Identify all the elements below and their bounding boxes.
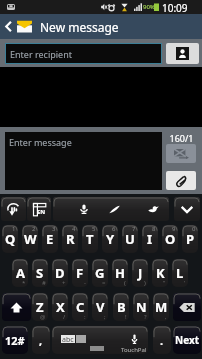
button[interactable]: H [112,259,128,287]
staticText: Next [175,333,200,347]
staticText: , [165,313,167,321]
button[interactable]: . [153,326,171,354]
staticText: Enter message [9,136,72,148]
staticText: 90% [143,3,155,11]
button[interactable]: T [82,225,98,253]
staticText: 5 [92,225,96,233]
button[interactable]: V [92,293,108,321]
staticText: E [46,230,54,248]
staticText: G [95,264,105,282]
button[interactable]: U [122,225,138,253]
staticText: T [86,230,94,248]
staticText: , [39,333,43,348]
button[interactable]: N [133,293,149,321]
button[interactable]: Next [173,326,201,354]
button[interactable]: S [32,259,48,287]
staticText: : [84,313,86,321]
button[interactable]: Hide keyboard [174,197,200,221]
button[interactable]: J [132,259,148,287]
button[interactable]: Q [2,225,18,253]
staticText: * [22,279,26,287]
staticText: Z [36,298,44,316]
button[interactable]: Send message [166,144,196,163]
staticText: J [138,264,143,282]
staticText: 8 [152,225,156,233]
staticText: 3 [52,225,56,233]
button[interactable]: Shift [2,293,31,321]
button[interactable]: G [92,259,108,287]
button[interactable]: TouchPal menu [1,197,26,221]
staticText: ( [124,279,126,287]
button[interactable]: R [62,225,78,253]
button[interactable]: Attach [166,171,196,190]
staticText: 12# [5,333,25,348]
staticText: / [63,313,66,321]
staticText: - [84,279,86,287]
staticText: # [42,279,46,287]
button[interactable]: L [172,259,188,287]
staticText: = [102,279,106,287]
staticText: 7 [132,225,136,233]
button[interactable]: Space [52,326,148,354]
staticText: ! [125,313,127,321]
button[interactable]: I [142,225,158,253]
staticText: TouchPal [121,346,147,354]
button[interactable]: Navigate up [0,14,16,39]
staticText: + [62,279,66,287]
staticText: U [125,230,135,248]
button[interactable]: C [72,293,88,321]
staticText: D [55,264,65,282]
button[interactable]: P [182,225,198,253]
staticText: ' [184,279,186,287]
staticText: ; [104,313,106,321]
staticText: N [136,298,147,316]
staticText: K [156,264,165,282]
staticText: 9 [172,225,176,233]
staticText: W [24,230,37,248]
staticText: A [16,264,25,282]
button[interactable]: A [12,259,28,287]
button[interactable]: F [72,259,88,287]
staticText: M [155,298,168,316]
button[interactable]: , [32,326,50,354]
button[interactable]: X [52,293,68,321]
staticText: 2 [32,225,36,233]
staticText: ) [144,279,146,287]
staticText: abc [62,335,74,343]
button[interactable]: Z [32,293,48,321]
button[interactable]: Enter recipient [6,44,161,63]
staticText: B [117,298,126,316]
staticText: 6 [112,225,116,233]
button[interactable]: B [113,293,129,321]
staticText: 0 [192,225,196,233]
staticText: X [56,298,65,316]
button[interactable]: 12# [2,326,28,354]
button[interactable]: Input options [53,197,169,221]
button[interactable]: Enter message [5,132,162,190]
staticText: L [176,264,184,282]
staticText: " [163,279,166,287]
button[interactable]: Y [102,225,118,253]
button[interactable]: K [152,259,168,287]
staticText: R [66,230,75,248]
button[interactable]: O [162,225,178,253]
staticText: 1 [12,225,16,233]
staticText: Q [5,230,16,248]
button[interactable]: Delete [173,293,201,321]
staticText: Y [106,230,115,248]
staticText: O [165,230,176,248]
button[interactable]: Select contacts [166,43,199,64]
button[interactable]: E [42,225,58,253]
button[interactable]: Input language [27,197,51,221]
staticText: F [76,264,84,282]
staticText: @ [40,313,46,321]
staticText: C [76,298,85,316]
button[interactable]: M [153,293,169,321]
staticText: . [160,333,164,348]
staticText: V [96,298,105,316]
staticText: P [186,230,195,248]
button[interactable]: W [22,225,38,253]
staticText: H [115,264,125,282]
button[interactable]: D [52,259,68,287]
staticText: 160/1 [166,132,197,144]
